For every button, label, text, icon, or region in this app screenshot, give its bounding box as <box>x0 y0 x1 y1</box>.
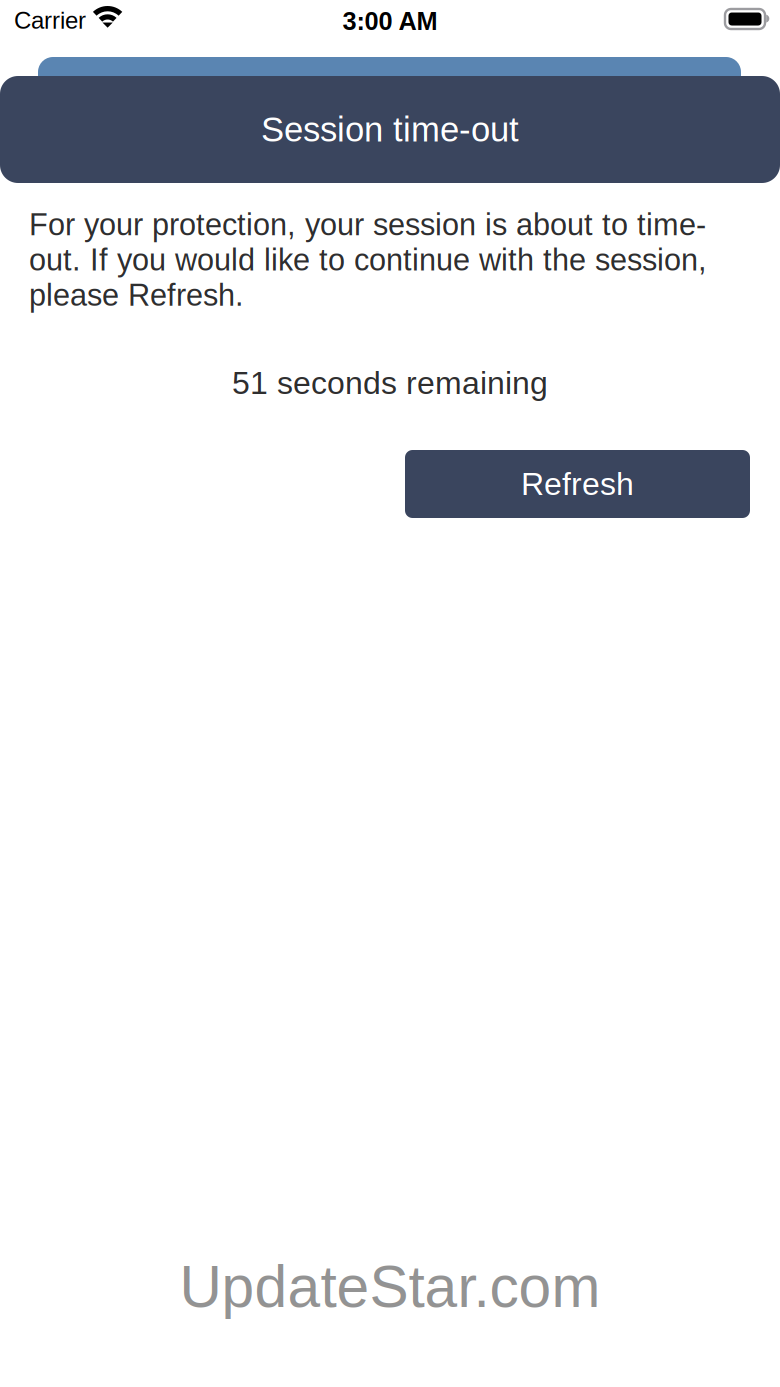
staticText: For your protection, your session is abo… <box>29 207 707 313</box>
staticText: Refresh <box>521 466 634 502</box>
staticText: Session time-out <box>261 110 519 149</box>
staticText: 51 seconds remaining <box>232 365 548 401</box>
staticText: UpdateStar.com <box>179 1254 600 1319</box>
staticText: 3:00 AM <box>342 7 437 35</box>
staticText: Carrier <box>14 7 86 34</box>
button[interactable]: Refresh <box>405 450 750 518</box>
